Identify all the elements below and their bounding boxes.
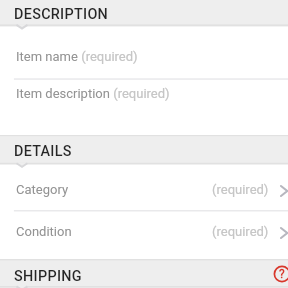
button[interactable]: Item description — [0, 80, 288, 135]
staticText: ? — [279, 267, 285, 281]
staticText: DESCRIPTION — [14, 6, 109, 23]
staticText: (required) — [212, 182, 269, 197]
staticText: (required) — [78, 49, 138, 64]
staticText: Item description — [16, 86, 110, 101]
staticText: (required) — [212, 224, 269, 239]
staticText: Condition — [16, 224, 72, 239]
button[interactable]: Item name — [0, 26, 288, 78]
staticText: (required) — [110, 86, 170, 101]
staticText: DETAILS — [14, 143, 72, 160]
button[interactable]: Category — [0, 164, 288, 210]
staticText: Category — [16, 182, 69, 197]
button[interactable]: Help — [271, 263, 288, 285]
button[interactable]: Condition — [0, 211, 288, 255]
staticText: Item name — [16, 49, 78, 64]
staticText: SHIPPING — [14, 268, 82, 285]
